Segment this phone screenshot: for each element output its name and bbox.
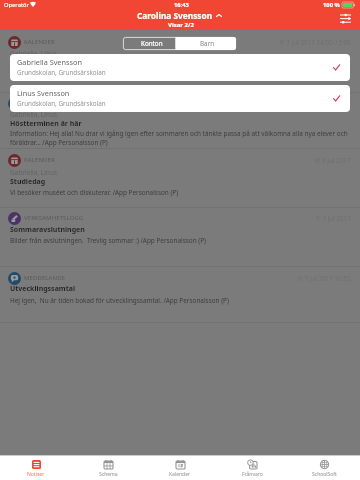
button[interactable]: Notiser <box>0 456 72 480</box>
staticText: Höstterminen är här <box>10 119 82 129</box>
staticText: KALENDER <box>24 38 55 46</box>
staticText: Bilder från avslutningen. Trevlig sommar… <box>10 236 206 245</box>
staticText: Konton <box>141 39 163 48</box>
button[interactable] <box>0 207 360 266</box>
button[interactable] <box>0 148 360 207</box>
staticText: Hej igen, Nu är tiden bokad för utveckli… <box>10 296 229 305</box>
staticText: Kalender <box>169 471 191 478</box>
staticText: Utvecklingssamtal <box>10 284 75 294</box>
button[interactable] <box>0 30 360 92</box>
staticText: SchoolSoft <box>312 471 337 478</box>
staticText: Barn <box>200 39 215 48</box>
staticText: 16:43 <box>174 1 189 9</box>
staticText: Visar 2/2 <box>168 21 194 29</box>
button[interactable]: Filter <box>336 11 354 28</box>
button[interactable]: Barn <box>179 37 236 50</box>
staticText: fr 7 jul 2017 11:40 <box>298 99 351 108</box>
staticText: föräldrar... /App Personalsson (P) <box>10 138 108 147</box>
staticText: Gabriella, Linus <box>10 49 58 58</box>
staticText: 100 % <box>323 1 340 9</box>
button[interactable]: Carolina Svensson <box>137 10 222 21</box>
button[interactable]: Frånvaro <box>216 456 288 480</box>
button[interactable] <box>0 266 360 322</box>
staticText: Operatör <box>4 1 29 9</box>
staticText: Notiser <box>27 471 45 478</box>
staticText: Grundskolan, Grundsärskolan <box>17 99 106 108</box>
staticText: Gabriella Svensson <box>17 57 82 67</box>
staticText: Gabriella, Linus <box>10 110 58 119</box>
staticText: Föräldramöte <box>10 58 58 68</box>
staticText: MEDDELANDE <box>24 100 66 108</box>
staticText: Vi besöker muséet och diskuterar. /App P… <box>10 188 179 197</box>
staticText: Schema <box>99 471 118 478</box>
staticText: Studiedag <box>10 177 46 187</box>
staticText: Välkomna till höstens första föräldramöt… <box>10 69 204 78</box>
button[interactable] <box>0 92 360 148</box>
staticText: Frånvaro <box>242 471 263 478</box>
staticText: Sommaravslutningen <box>10 225 85 235</box>
button[interactable]: Schema <box>72 456 144 480</box>
staticText: Grundskolan, Grundsärskolan <box>17 68 106 77</box>
button[interactable]: Kalender <box>144 456 216 480</box>
staticText: Information: Hej alla! Nu drar vi igång … <box>10 129 348 138</box>
staticText: VERKSAMHETSLOGG <box>24 214 84 222</box>
button[interactable]: Konton <box>123 37 180 50</box>
staticText: KALENDER <box>24 156 55 164</box>
button[interactable]: Gabriella Svensson <box>10 54 350 81</box>
staticText: MEDDELANDE <box>24 274 66 282</box>
staticText: Linus Svensson <box>17 88 70 98</box>
staticText: Carolina Svensson <box>137 10 213 21</box>
button[interactable]: Linus Svensson <box>10 85 350 112</box>
staticText: Gabriella, Linus <box>10 168 58 177</box>
button[interactable]: SchoolSoft <box>288 456 360 480</box>
